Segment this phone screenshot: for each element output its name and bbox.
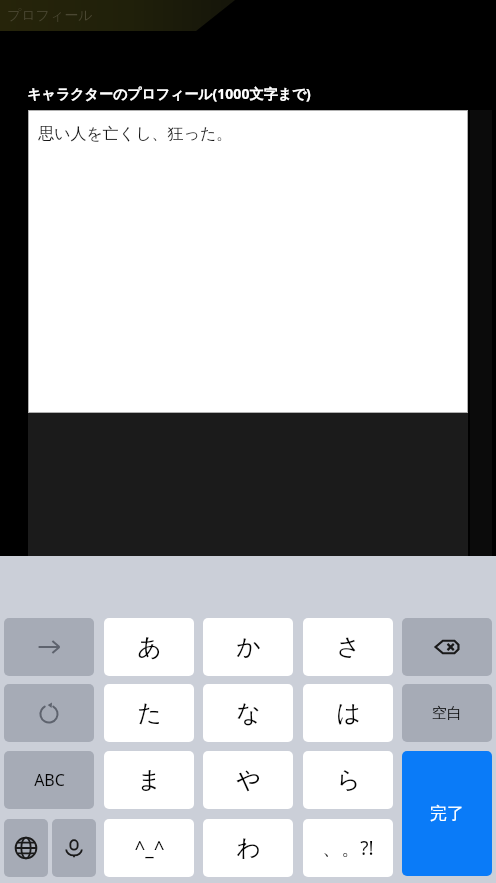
button[interactable]: な — [203, 684, 293, 742]
button[interactable]: ま — [104, 751, 194, 809]
button[interactable]: 、。?! — [303, 819, 393, 877]
staticText: か — [236, 632, 261, 662]
button[interactable]: 削除 — [402, 618, 492, 676]
staticText: 完了 — [430, 803, 464, 824]
button[interactable]: や — [203, 751, 293, 809]
staticText: さ — [336, 632, 361, 662]
staticText: ^_^ — [134, 835, 165, 861]
staticText: は — [336, 698, 361, 728]
button[interactable]: 音声入力 — [52, 819, 96, 877]
button[interactable]: は — [303, 684, 393, 742]
button[interactable]: た — [104, 684, 194, 742]
staticText: 空白 — [432, 704, 462, 723]
button[interactable]: キーボード切替 — [4, 819, 48, 877]
staticText: ま — [137, 765, 162, 795]
staticText: キャラクターのプロフィール(1000文字まで) — [27, 84, 311, 103]
staticText: わ — [236, 833, 261, 863]
button[interactable]: 次候補 — [4, 618, 94, 676]
button[interactable]: ABC — [4, 751, 94, 809]
button[interactable]: 顔文字 — [104, 819, 194, 877]
staticText: な — [236, 698, 261, 728]
staticText: プロフィール — [7, 7, 93, 25]
staticText: 思い人を亡くし、狂った。 — [38, 124, 233, 144]
staticText: た — [137, 698, 162, 728]
button[interactable]: 取り消し — [4, 684, 94, 742]
button[interactable]: わ — [203, 819, 293, 877]
button[interactable]: 思い人を亡くし、狂った。 — [29, 111, 467, 412]
staticText: ABC — [34, 769, 65, 791]
button[interactable]: 完了 — [402, 751, 492, 876]
staticText: 、。?! — [322, 835, 374, 861]
staticText: あ — [137, 632, 162, 662]
button[interactable]: ら — [303, 751, 393, 809]
button[interactable]: さ — [303, 618, 393, 676]
button[interactable]: 空白 — [402, 684, 492, 742]
button[interactable]: あ — [104, 618, 194, 676]
staticText: ら — [336, 765, 361, 795]
button[interactable]: か — [203, 618, 293, 676]
staticText: や — [236, 765, 261, 795]
